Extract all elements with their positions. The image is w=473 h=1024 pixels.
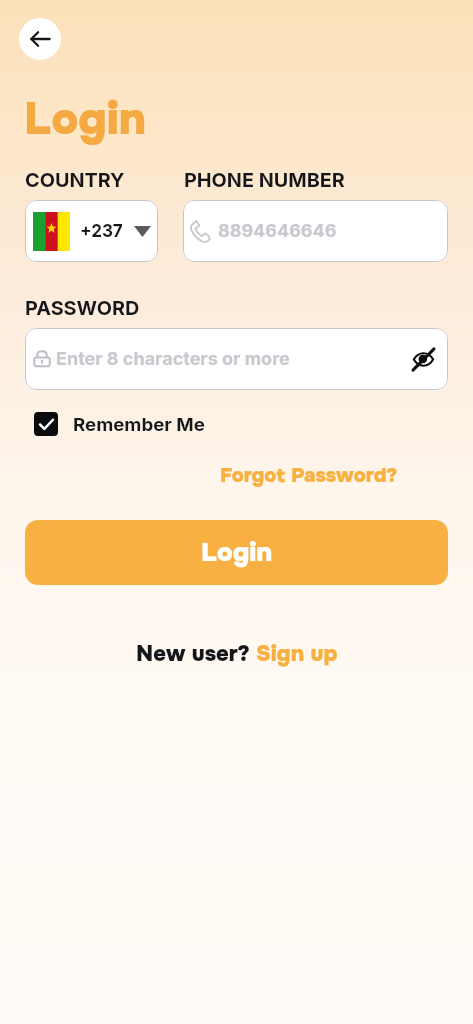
button[interactable]: Remember Me [34,408,205,440]
staticText: Remember Me [73,413,205,436]
staticText: Login [201,536,273,569]
staticText: COUNTRY [25,168,125,192]
button[interactable]: Login [25,520,448,585]
button[interactable]: Show password [409,345,437,373]
button[interactable]: Forgot Password? [220,463,398,489]
button[interactable]: Sign up [256,640,338,668]
button[interactable]: 8894646646 [183,200,448,262]
button[interactable]: +237 [25,200,158,262]
button[interactable]: Back [19,18,61,60]
staticText: +237 [80,221,123,242]
staticText: 8894646646 [218,220,337,242]
staticText: New user? [136,640,256,668]
staticText: Login [24,91,147,148]
staticText: PHONE NUMBER [184,168,345,192]
button[interactable]: Enter 8 characters or more [25,328,448,390]
staticText: PASSWORD [25,296,140,320]
staticText: Enter 8 characters or more [56,348,409,370]
